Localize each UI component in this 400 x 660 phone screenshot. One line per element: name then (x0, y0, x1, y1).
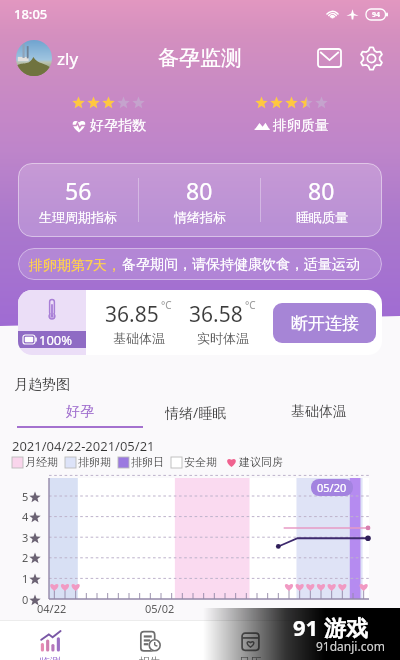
staticText: 实时体温 (197, 330, 249, 346)
staticText: 2021/04/22-2021/05/21 (12, 437, 155, 455)
staticText: 80 (186, 175, 213, 206)
button[interactable]: Settings (356, 43, 386, 73)
button[interactable]: 80 (139, 175, 260, 225)
button[interactable]: 报告 (100, 621, 200, 660)
staticText: 18:05 (14, 5, 48, 23)
button[interactable]: 好孕指数 (48, 88, 168, 142)
staticText: 05/02 (145, 601, 175, 616)
button[interactable]: 排卵质量 (231, 88, 351, 142)
button[interactable]: 情绪/睡眠 (133, 403, 259, 429)
staticText: 80 (308, 175, 335, 206)
staticText: 基础体温 (291, 403, 347, 421)
button[interactable]: 日历 (200, 621, 300, 660)
button[interactable]: zly (16, 40, 79, 76)
staticText: 日历 (239, 655, 261, 660)
staticText: 备孕监测 (158, 45, 242, 71)
staticText: °C (161, 298, 172, 312)
staticText: 月经期 (25, 455, 58, 469)
staticText: 安全期 (184, 455, 217, 469)
staticText: 情绪/睡眠 (165, 403, 227, 422)
staticText: 3 (22, 530, 29, 545)
staticText: °C (245, 298, 256, 312)
staticText: 4 (22, 509, 29, 524)
staticText: 报告 (139, 655, 161, 660)
staticText: 备孕期间，请保持健康饮食，适量运动 (122, 256, 360, 274)
button[interactable]: 56 (18, 175, 138, 225)
staticText: 1 (22, 571, 29, 586)
staticText: 排卵期第7天， (29, 255, 122, 274)
staticText: 好孕指数 (90, 117, 146, 135)
staticText: 05/20 (317, 480, 347, 495)
staticText: 基础体温 (113, 330, 165, 346)
staticText: 94 (372, 10, 381, 20)
button[interactable]: 好孕 (17, 403, 143, 428)
staticText: 36.85 (105, 300, 159, 329)
staticText: 月趋势图 (14, 376, 70, 394)
button[interactable]: 排卵期第7天， (18, 248, 382, 280)
staticText: 0 (22, 592, 29, 607)
staticText: 5 (22, 489, 29, 504)
button[interactable]: 监测 (0, 621, 100, 660)
staticText: 好孕 (66, 403, 94, 421)
staticText: 睡眠质量 (296, 209, 348, 225)
staticText: 建议同房 (239, 455, 283, 469)
staticText: 排卵期 (78, 455, 111, 469)
button[interactable]: 断开连接 (273, 303, 376, 343)
staticText: 监测 (39, 655, 61, 660)
staticText: 04/22 (37, 601, 67, 616)
button[interactable]: 80 (261, 175, 382, 225)
staticText: 36.58 (189, 300, 243, 329)
staticText: 情绪指标 (174, 209, 226, 225)
button[interactable]: Messages (314, 43, 344, 73)
staticText: 2 (22, 550, 29, 565)
staticText: 断开连接 (291, 313, 359, 334)
staticText: 排卵日 (131, 455, 164, 469)
button[interactable]: 我的 (300, 621, 400, 660)
button[interactable]: 基础体温 (256, 403, 382, 428)
staticText: 56 (65, 175, 92, 206)
staticText: 91 游戏 (293, 612, 368, 642)
staticText: 100% (39, 331, 73, 348)
staticText: 生理周期指标 (39, 209, 117, 225)
staticText: 91danji.com (316, 638, 385, 654)
staticText: 排卵质量 (273, 117, 329, 135)
staticText: zly (57, 47, 79, 70)
